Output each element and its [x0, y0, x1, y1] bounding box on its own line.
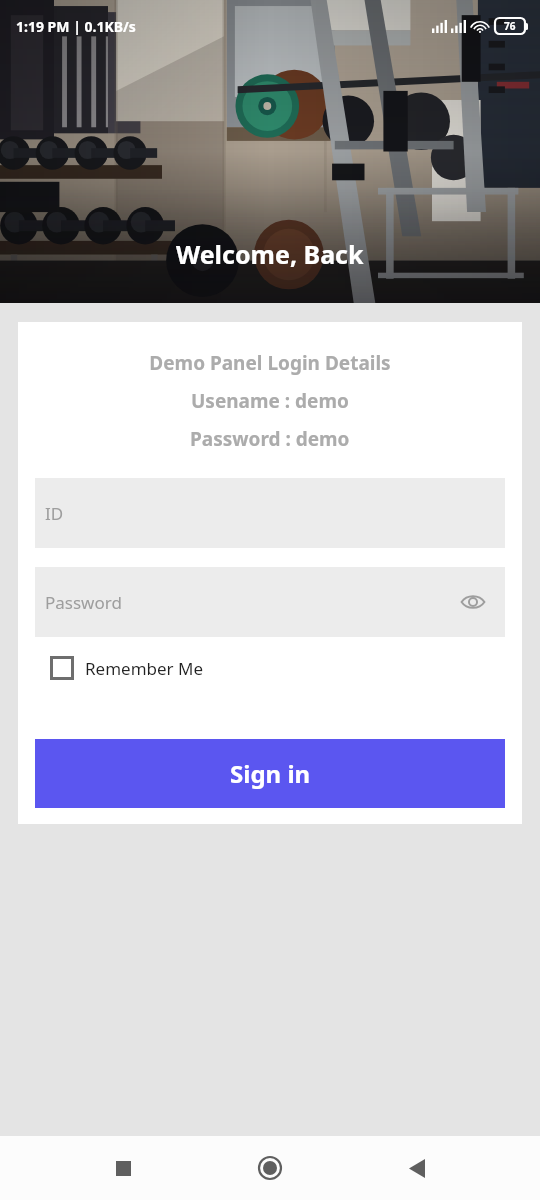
- staticText: Remember Me: [85, 657, 204, 680]
- button[interactable]: Back: [393, 1144, 441, 1192]
- button[interactable]: ID: [35, 478, 505, 548]
- staticText: Demo Panel Login Details: [149, 350, 391, 376]
- staticText: Welcome, Back: [176, 237, 364, 271]
- staticText: Password: [45, 591, 122, 614]
- button[interactable]: Recent apps: [99, 1144, 147, 1192]
- button[interactable]: Remember Me: [46, 652, 208, 684]
- button[interactable]: Home: [246, 1144, 294, 1192]
- button[interactable]: Password: [35, 567, 505, 637]
- staticText: Password : demo: [190, 426, 350, 452]
- button[interactable]: Sign in: [35, 739, 505, 808]
- staticText: Usename : demo: [191, 388, 349, 414]
- staticText: 76: [504, 19, 516, 33]
- staticText: 1:19 PM | 0.1KB/s: [16, 17, 136, 36]
- staticText: Sign in: [230, 757, 311, 790]
- staticText: ID: [45, 502, 64, 525]
- button[interactable]: Show password: [455, 584, 491, 620]
